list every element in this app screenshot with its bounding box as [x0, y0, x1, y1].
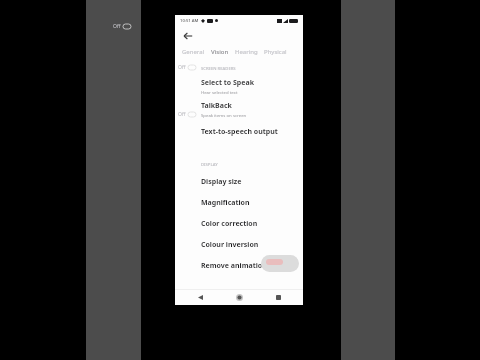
staticText: 10:51 AM	[180, 18, 199, 24]
button[interactable]: Recent apps	[264, 290, 292, 305]
button[interactable]: General	[182, 48, 205, 56]
staticText: Colour inversion	[201, 240, 259, 250]
staticText: Select to Speak	[201, 78, 254, 88]
button[interactable]: Back	[186, 290, 214, 305]
staticText: Text-to-speech output	[201, 127, 278, 137]
button[interactable]: Colour inversion	[175, 234, 303, 255]
button[interactable]: Physical	[264, 48, 287, 56]
button[interactable]: TalkBack	[175, 98, 303, 121]
button[interactable]: Magnification	[175, 192, 303, 213]
staticText: Hearing	[235, 48, 258, 56]
button[interactable]: Text-to-speech output	[175, 121, 303, 142]
button[interactable]: Display size	[175, 171, 303, 192]
staticText: SCREEN READERS	[201, 66, 236, 72]
button[interactable]: Home	[225, 290, 253, 305]
staticText: Vision	[211, 48, 229, 56]
button[interactable]: Select to Speak	[175, 75, 303, 98]
staticText: Off	[178, 111, 186, 118]
staticText: Off	[113, 23, 121, 30]
button[interactable]: Remove animations	[175, 255, 303, 276]
staticText: Remove animations	[201, 261, 271, 271]
staticText: Hear selected text	[201, 89, 238, 95]
staticText: General	[182, 48, 205, 56]
staticText: Color correction	[201, 219, 258, 229]
staticText: Off	[178, 64, 186, 71]
button[interactable]: Navigate up	[175, 26, 303, 45]
staticText: Display size	[201, 177, 242, 187]
button[interactable]: Hearing	[235, 48, 258, 56]
button[interactable]: Color correction	[175, 213, 303, 234]
button[interactable]: Vision	[211, 48, 229, 56]
staticText: Magnification	[201, 198, 250, 208]
staticText: Physical	[264, 48, 287, 56]
staticText: TalkBack	[201, 101, 232, 111]
staticText: Speak items on screen	[201, 112, 247, 118]
staticText: DISPLAY	[201, 162, 218, 168]
